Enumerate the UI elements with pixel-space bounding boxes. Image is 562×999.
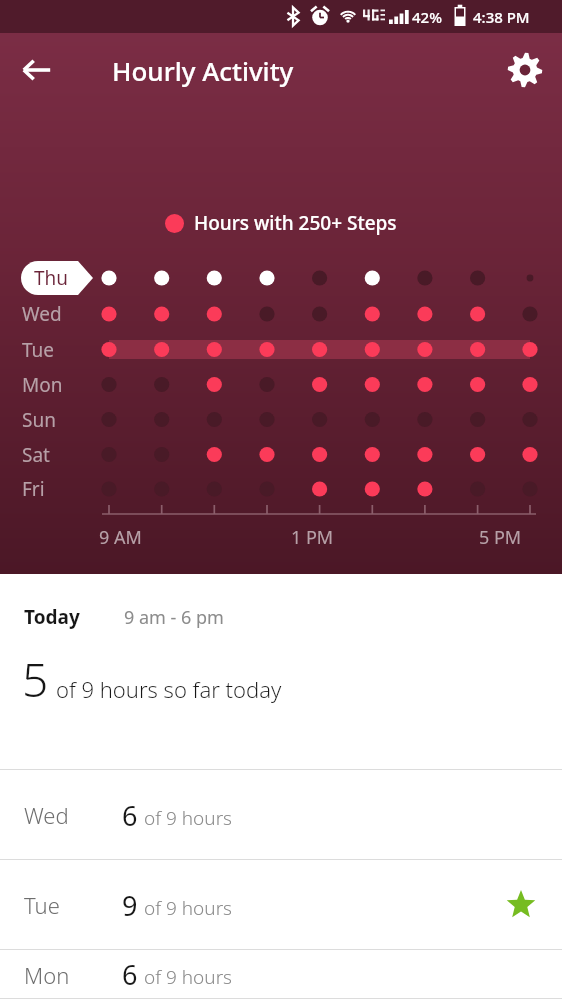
staticText: Tue	[24, 890, 60, 920]
staticText: Hourly Activity	[112, 53, 294, 88]
staticText: 1 PM	[291, 525, 334, 550]
staticText: 9 am - 6 pm	[124, 605, 224, 630]
staticText: of 9 hours	[144, 805, 233, 831]
staticText: 5 PM	[479, 525, 522, 550]
staticText: Today	[24, 604, 80, 630]
staticText: Wed	[22, 301, 62, 327]
button[interactable]: Settings	[488, 33, 562, 107]
staticText: of 9 hours	[144, 964, 233, 990]
staticText: Thu	[34, 265, 69, 291]
button[interactable]: Tue	[0, 860, 562, 950]
staticText: 4:38 PM	[473, 7, 530, 27]
button[interactable]: Wed	[0, 770, 562, 860]
button[interactable]: Mon	[0, 950, 562, 999]
staticText: 5	[22, 648, 49, 711]
button[interactable]: Today	[0, 574, 562, 770]
button[interactable]: Back	[0, 33, 74, 107]
staticText: of 9 hours	[144, 895, 233, 921]
staticText: 9	[122, 887, 138, 924]
staticText: Wed	[24, 800, 69, 830]
staticText: 42%	[412, 7, 442, 27]
staticText: Sat	[22, 442, 50, 468]
staticText: Fri	[22, 476, 45, 502]
staticText: 6	[122, 956, 138, 993]
staticText: Mon	[24, 960, 70, 990]
staticText: of 9 hours so far today	[56, 674, 282, 704]
staticText: Mon	[22, 372, 63, 398]
staticText: Sun	[22, 407, 56, 433]
staticText: 6	[122, 797, 138, 834]
staticText: 9 AM	[99, 525, 142, 550]
staticText: Tue	[22, 337, 55, 363]
staticText: Hours with 250+ Steps	[194, 210, 397, 236]
